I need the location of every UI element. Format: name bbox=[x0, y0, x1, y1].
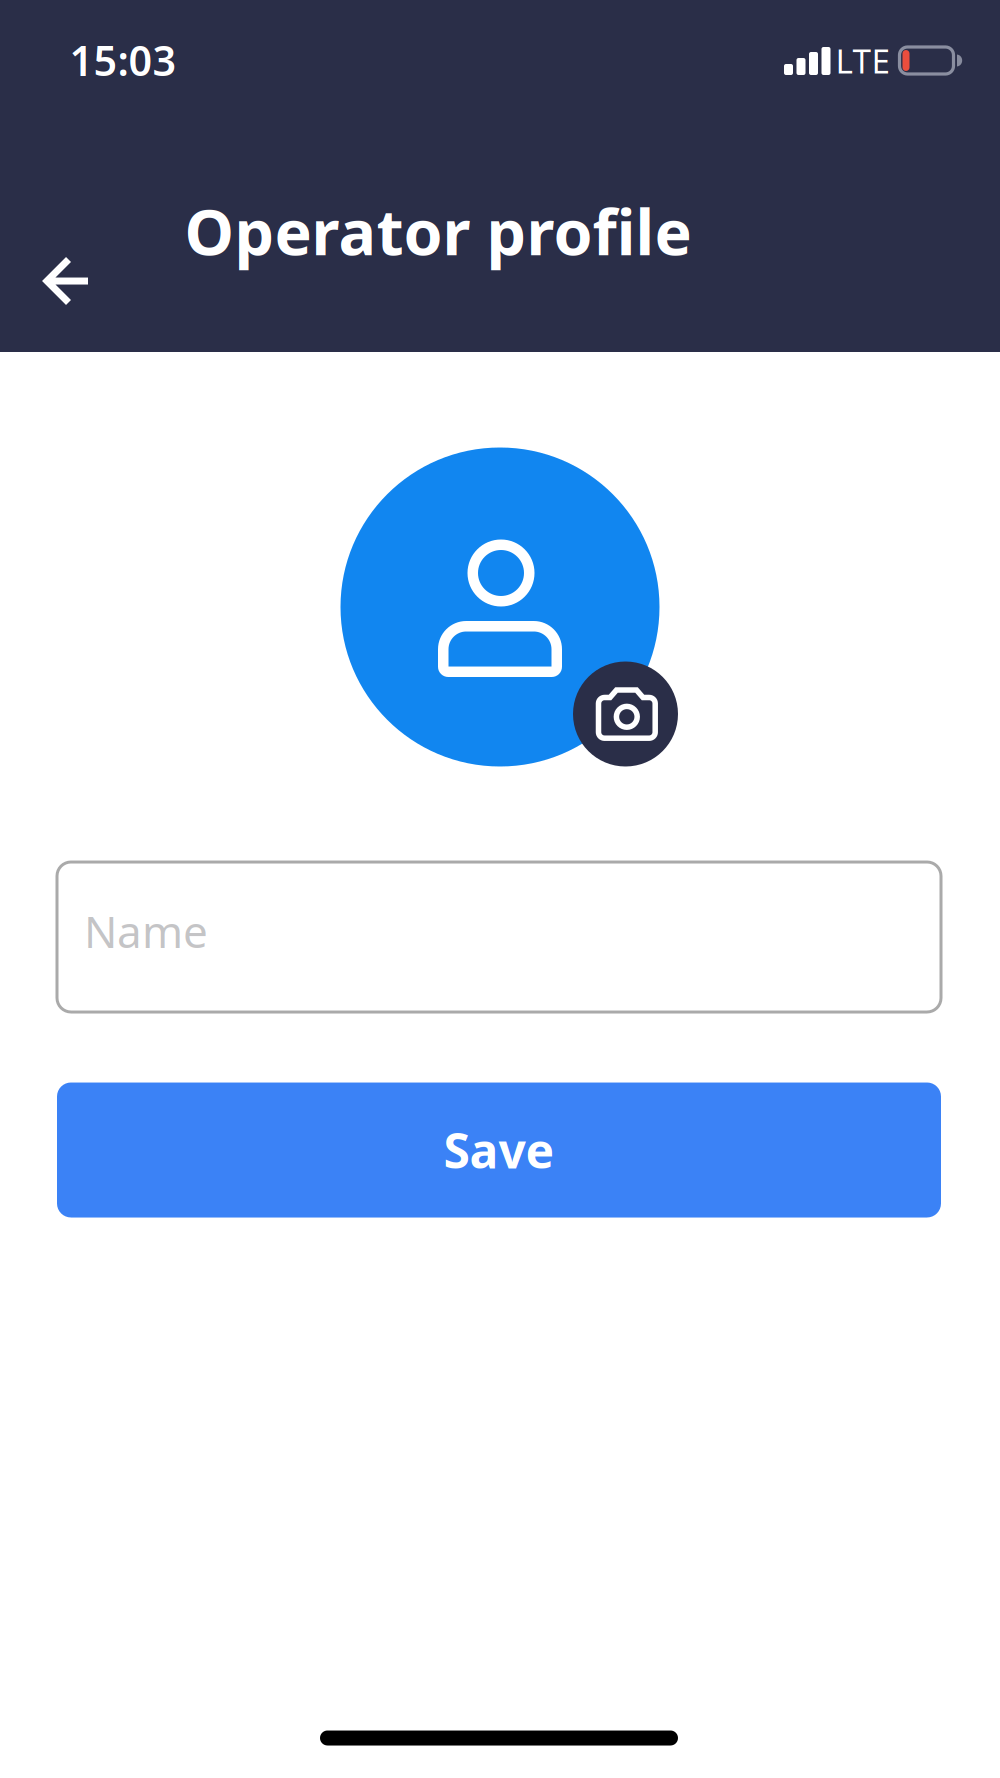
button[interactable]: Save bbox=[57, 1082, 941, 1217]
staticText: Operator profile bbox=[184, 189, 691, 273]
staticText: LTE bbox=[835, 38, 890, 83]
staticText: Name bbox=[84, 902, 208, 960]
button[interactable]: Change photo bbox=[573, 661, 678, 766]
staticText: Save bbox=[443, 1118, 554, 1182]
button[interactable]: Name bbox=[57, 862, 941, 1012]
button[interactable]: Back bbox=[23, 238, 109, 324]
staticText: 15:03 bbox=[69, 33, 176, 87]
